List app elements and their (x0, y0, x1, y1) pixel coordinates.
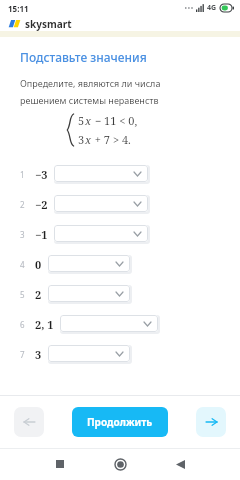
staticText: 5 (78, 113, 85, 128)
staticText: 5 (20, 289, 25, 300)
button[interactable]: Выбрать ответ для −2 (54, 195, 148, 212)
staticText: + 7 > 4. (92, 132, 131, 147)
staticText: x (85, 132, 92, 147)
staticText: 3 (78, 132, 85, 147)
staticText: решением системы неравенств (20, 94, 159, 106)
button[interactable]: Выбрать ответ для −1 (54, 225, 148, 242)
button[interactable]: Назад (163, 448, 197, 480)
button[interactable]: Продолжить (72, 407, 168, 437)
staticText: x (85, 113, 92, 128)
button[interactable]: Последние приложения (43, 448, 77, 480)
staticText: −2 (35, 197, 48, 212)
staticText: 7 (20, 349, 25, 360)
staticText: 0 (35, 257, 42, 272)
staticText: skysmart (25, 17, 72, 31)
staticText: 3 (20, 229, 25, 240)
staticText: 4 (20, 259, 25, 270)
staticText: 2 (20, 199, 25, 210)
staticText: Подставьте значения (20, 49, 147, 65)
button[interactable]: Выбрать ответ для 2, 1 (60, 315, 158, 332)
button[interactable]: Главный экран (103, 448, 137, 480)
staticText: 15:11 (8, 3, 29, 14)
staticText: 2, 1 (35, 317, 54, 332)
button[interactable]: Выбрать ответ для 0 (48, 255, 130, 272)
button[interactable]: Вперёд (196, 407, 226, 437)
staticText: 1 (20, 169, 25, 180)
staticText: −1 (35, 227, 48, 242)
button[interactable]: Выбрать ответ для 3 (48, 345, 130, 362)
staticText: 4G (207, 3, 217, 13)
staticText: 6 (20, 319, 25, 330)
staticText: − 11 < 0, (92, 113, 138, 128)
staticText: Определите, являются ли числа (20, 77, 161, 89)
button[interactable]: Назад (14, 407, 44, 437)
staticText: 2 (35, 287, 42, 302)
staticText: 3 (35, 347, 42, 362)
staticText: −3 (35, 167, 48, 182)
button[interactable]: Выбрать ответ для 2 (48, 285, 130, 302)
button[interactable]: Выбрать ответ для −3 (54, 165, 148, 182)
staticText: Продолжить (87, 415, 153, 429)
